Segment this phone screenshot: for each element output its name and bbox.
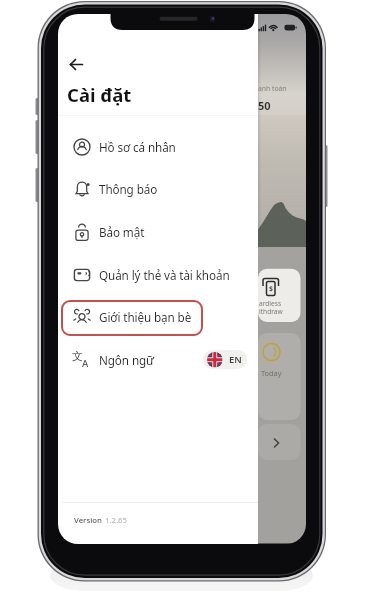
staticText: Cài đặt [67, 82, 132, 107]
staticText: Ngôn ngữ [99, 352, 154, 368]
staticText: A [82, 357, 89, 370]
button[interactable]: Hồ sơ cá nhân [58, 125, 258, 168]
staticText: Hồ sơ cá nhân [99, 139, 176, 155]
staticText: EN [229, 353, 242, 366]
staticText: ardless ithdraw [259, 299, 283, 316]
staticText: $ [269, 284, 274, 294]
button[interactable] [64, 52, 89, 77]
staticText: Quản lý thẻ và tài khoản [99, 267, 230, 283]
staticText: 50 [258, 98, 271, 113]
staticText: Today [261, 368, 282, 378]
staticText: Version [74, 515, 102, 526]
staticText: Bảo mật [99, 224, 145, 240]
staticText: 1.2.65 [105, 515, 128, 526]
button[interactable]: Thông báo [58, 167, 258, 210]
staticText: Giới thiệu bạn bè [99, 309, 192, 325]
button[interactable]: EN [203, 350, 247, 369]
staticText: Thông báo [99, 181, 158, 197]
staticText: 文 [72, 349, 83, 363]
staticText: anh toán [258, 84, 287, 93]
button[interactable]: 文 [58, 338, 258, 381]
button[interactable]: Giới thiệu bạn bè [58, 295, 258, 338]
button[interactable]: Bảo mật [58, 210, 258, 253]
button[interactable]: Quản lý thẻ và tài khoản [58, 253, 258, 296]
